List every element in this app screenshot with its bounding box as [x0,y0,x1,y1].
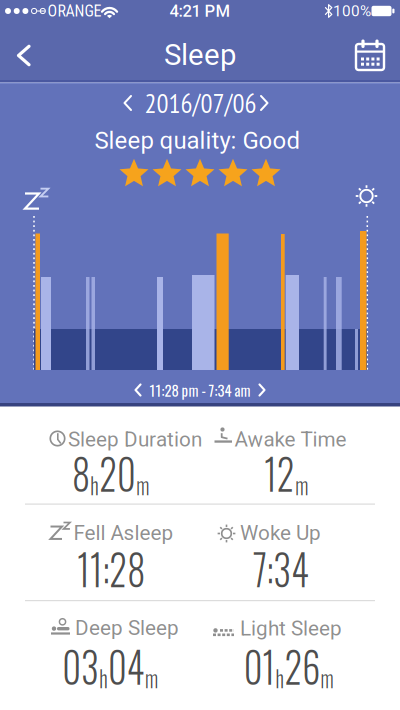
staticText: m [141,466,156,502]
staticText: Sleep quality: Good [94,126,300,154]
staticText: Light Sleep [240,616,342,641]
staticText: h [87,466,97,502]
staticText: Fell Asleep [73,521,173,545]
staticText: h [273,659,283,695]
staticText: 11:28 [71,536,151,600]
staticText: 2016/07/06 [144,86,256,120]
staticText: 12 [260,441,296,504]
staticText: Sleep Duration [68,427,202,452]
staticText: 03 [54,634,97,697]
staticText: m [151,659,166,695]
staticText: 01 [236,634,273,697]
staticText: m [297,466,312,502]
staticText: 100% [333,2,371,20]
staticText: Woke Up [240,521,321,545]
staticText: 11:28 pm - 7:34 am [149,379,250,401]
staticText: 8 [65,441,86,504]
staticText: Deep Sleep [75,616,179,640]
staticText: ORANGE [47,2,101,20]
staticText: Sleep [164,38,236,72]
staticText: 4:21 PM [169,1,230,21]
staticText: 20 [97,441,140,504]
staticText: 7:34 [248,536,314,600]
staticText: m [326,659,341,695]
staticText: Awake Time [234,427,346,452]
staticText: 04 [108,634,151,697]
staticText: h [97,659,107,695]
staticText: 26 [284,634,326,697]
